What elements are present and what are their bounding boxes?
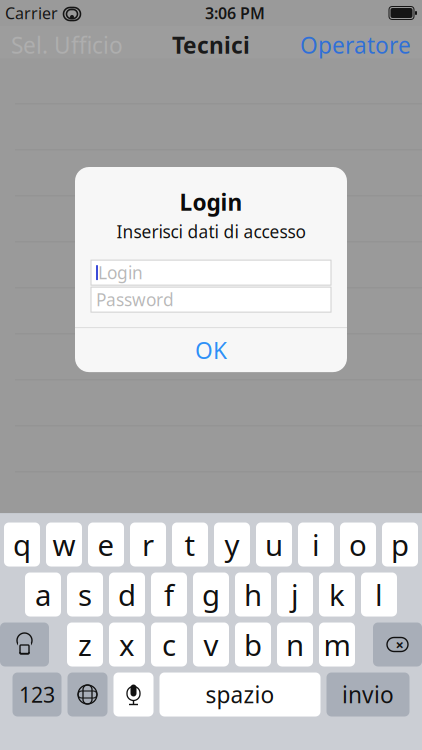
button[interactable]: Dictation <box>113 672 153 716</box>
button[interactable]: h <box>235 572 271 616</box>
staticText: a <box>35 575 51 614</box>
staticText: z <box>78 625 92 664</box>
button[interactable]: j <box>277 572 313 616</box>
staticText: e <box>97 525 114 564</box>
staticText: Operatore <box>300 30 411 60</box>
staticText: Password <box>96 288 174 311</box>
staticText: n <box>286 625 304 664</box>
button[interactable]: x <box>109 622 145 666</box>
staticText: m <box>323 625 350 664</box>
button[interactable]: OK <box>75 328 347 372</box>
button[interactable]: Shift <box>0 622 49 666</box>
button[interactable]: g <box>193 572 229 616</box>
staticText: Sel. Ufficio <box>11 30 123 60</box>
staticText: j <box>291 575 299 614</box>
staticText: OK <box>195 335 227 365</box>
staticText: g <box>202 575 220 614</box>
staticText: Login <box>98 261 143 284</box>
staticText: k <box>329 575 345 614</box>
staticText: t <box>184 525 195 564</box>
button[interactable]: o <box>340 522 376 566</box>
button[interactable]: Operatore <box>290 22 421 68</box>
staticText: q <box>13 525 31 564</box>
button[interactable]: m <box>319 622 355 666</box>
button[interactable]: Delete <box>373 622 422 666</box>
button[interactable]: spazio <box>159 672 320 716</box>
button[interactable]: n <box>277 622 313 666</box>
button[interactable]: e <box>88 522 124 566</box>
staticText: invio <box>342 679 394 709</box>
staticText: x <box>119 625 135 664</box>
staticText: 3:06 PM <box>205 2 265 24</box>
staticText: h <box>244 575 262 614</box>
button[interactable]: a <box>25 572 61 616</box>
button[interactable]: Sel. Ufficio <box>1 22 133 68</box>
button[interactable]: l <box>361 572 397 616</box>
staticText: 123 <box>19 680 55 709</box>
staticText: d <box>118 575 136 614</box>
staticText: w <box>52 525 75 564</box>
staticText: Inserisci dati di accesso <box>116 220 305 243</box>
button[interactable]: w <box>46 522 82 566</box>
staticText: c <box>162 625 176 664</box>
button[interactable]: k <box>319 572 355 616</box>
button[interactable]: Next keyboard <box>67 672 107 716</box>
staticText: b <box>244 625 262 664</box>
button[interactable]: q <box>4 522 40 566</box>
staticText: i <box>312 525 320 564</box>
staticText: × <box>395 635 403 654</box>
button[interactable]: t <box>172 522 208 566</box>
staticText: spazio <box>205 679 274 709</box>
button[interactable]: y <box>214 522 250 566</box>
staticText: r <box>142 525 154 564</box>
staticText: Carrier <box>5 2 58 24</box>
button[interactable]: u <box>256 522 292 566</box>
button[interactable]: 123 <box>12 672 61 716</box>
button[interactable]: d <box>109 572 145 616</box>
staticText: Login <box>179 187 242 217</box>
staticText: v <box>203 625 218 664</box>
button[interactable]: z <box>67 622 103 666</box>
staticText: u <box>265 525 283 564</box>
staticText: s <box>78 575 92 614</box>
button[interactable]: i <box>298 522 334 566</box>
button[interactable]: r <box>130 522 166 566</box>
button[interactable]: f <box>151 572 187 616</box>
button[interactable]: c <box>151 622 187 666</box>
button[interactable]: invio <box>326 672 409 716</box>
staticText: l <box>375 575 383 614</box>
button[interactable]: v <box>193 622 229 666</box>
button[interactable]: b <box>235 622 271 666</box>
staticText: Tecnici <box>172 30 250 60</box>
button[interactable]: s <box>67 572 103 616</box>
staticText: f <box>164 575 174 614</box>
staticText: p <box>391 525 409 564</box>
staticText: y <box>224 525 239 564</box>
button[interactable]: p <box>382 522 418 566</box>
staticText: o <box>349 525 367 564</box>
